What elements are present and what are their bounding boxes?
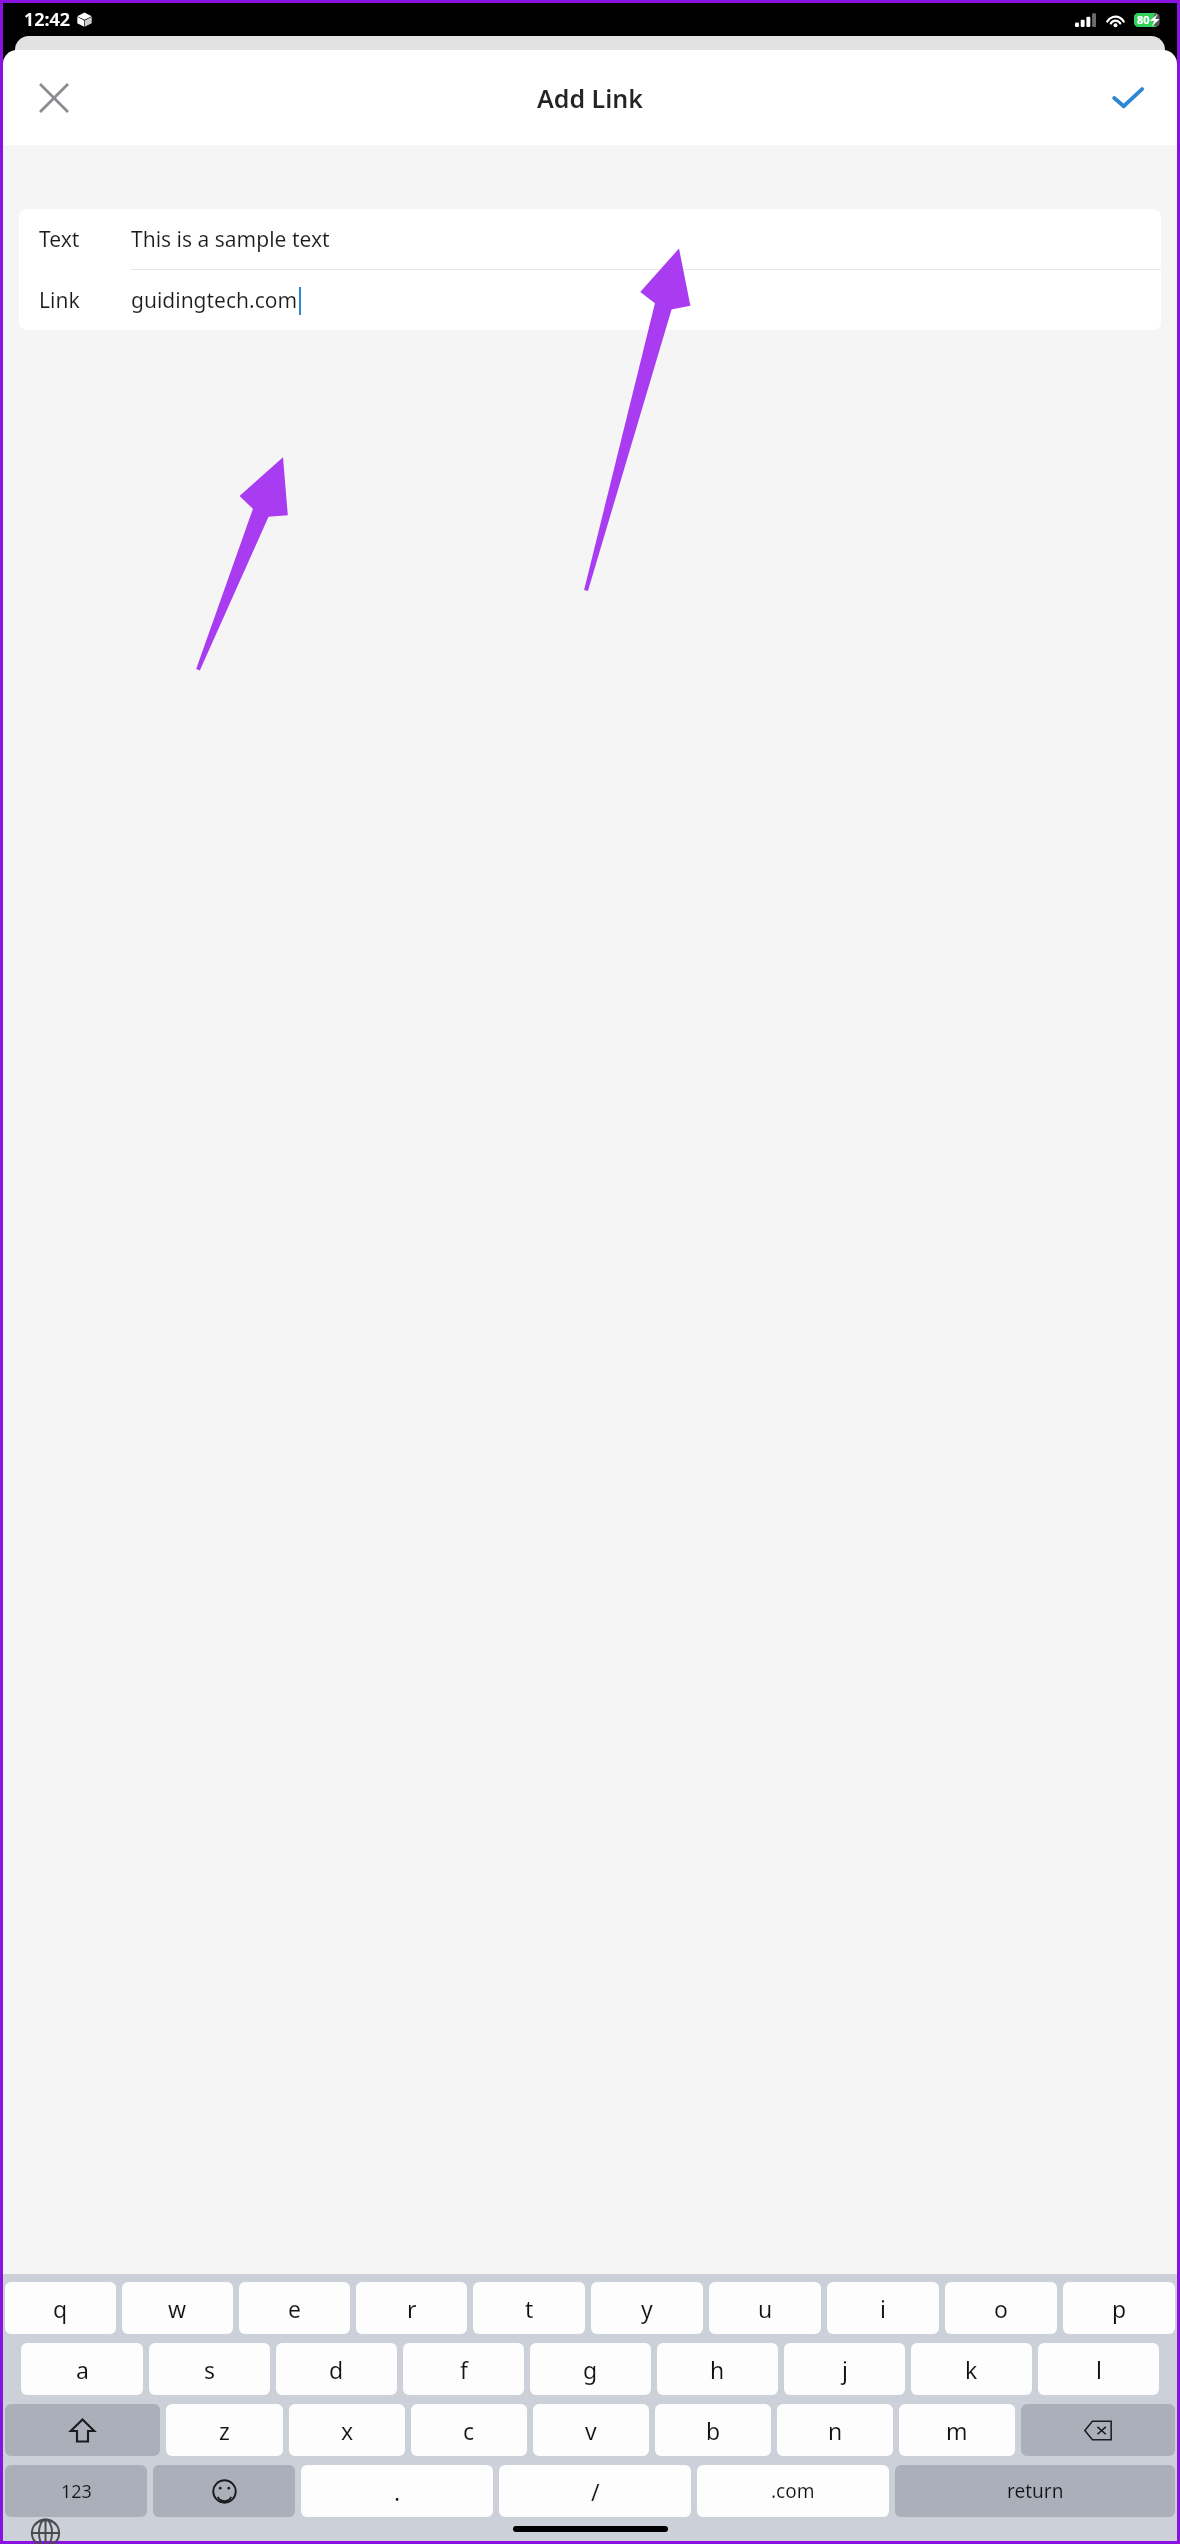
button[interactable]: e (239, 2282, 350, 2334)
staticText: x (341, 2415, 354, 2446)
button[interactable]: / (499, 2465, 691, 2517)
staticText: e (288, 2293, 301, 2324)
button[interactable]: j (784, 2343, 905, 2395)
button[interactable]: n (777, 2404, 893, 2456)
staticText: l (1096, 2354, 1102, 2385)
staticText: w (168, 2293, 187, 2324)
button[interactable]: c (411, 2404, 527, 2456)
button[interactable]: .com (697, 2465, 889, 2517)
button[interactable]: b (655, 2404, 771, 2456)
staticText: y (641, 2293, 653, 2324)
staticText: p (1112, 2293, 1127, 2324)
button[interactable]: Close (25, 69, 83, 127)
staticText: r (407, 2293, 417, 2324)
button[interactable]: w (122, 2282, 233, 2334)
button[interactable]: Change keyboard (25, 2525, 65, 2541)
staticText: Link (39, 286, 80, 315)
staticText: guidingtech.com (131, 286, 298, 315)
staticText: k (965, 2354, 978, 2385)
staticText: t (525, 2293, 534, 2324)
button[interactable]: m (899, 2404, 1015, 2456)
button[interactable]: 123 (5, 2465, 147, 2517)
staticText: s (204, 2354, 216, 2385)
button[interactable]: Link (19, 270, 1161, 330)
staticText: b (706, 2415, 721, 2446)
button[interactable]: g (530, 2343, 651, 2395)
button[interactable]: q (5, 2282, 116, 2334)
staticText: d (329, 2354, 344, 2385)
button[interactable]: a (21, 2343, 143, 2395)
button[interactable]: t (473, 2282, 585, 2334)
button[interactable]: . (301, 2465, 493, 2517)
button[interactable]: Backspace (1021, 2404, 1175, 2456)
staticText: n (828, 2415, 843, 2446)
button[interactable]: s (149, 2343, 270, 2395)
button[interactable]: i (827, 2282, 939, 2334)
staticText: c (463, 2415, 475, 2446)
button[interactable]: k (911, 2343, 1032, 2395)
button[interactable]: h (657, 2343, 778, 2395)
button[interactable]: o (945, 2282, 1057, 2334)
staticText: f (460, 2354, 468, 2385)
staticText: z (219, 2415, 230, 2446)
staticText: return (1007, 2478, 1064, 2504)
button[interactable]: Emoji (153, 2465, 295, 2517)
staticText: / (591, 2476, 600, 2507)
button[interactable]: u (709, 2282, 821, 2334)
button[interactable]: x (289, 2404, 405, 2456)
button[interactable]: y (591, 2282, 703, 2334)
staticText: o (994, 2293, 1008, 2324)
staticText: m (946, 2415, 968, 2446)
button[interactable]: f (403, 2343, 524, 2395)
button[interactable]: Shift (5, 2404, 160, 2456)
button[interactable]: z (166, 2404, 283, 2456)
staticText: h (710, 2354, 725, 2385)
button[interactable]: l (1038, 2343, 1159, 2395)
staticText: Add Link (537, 81, 643, 115)
button[interactable]: return (895, 2465, 1175, 2517)
button[interactable]: d (276, 2343, 397, 2395)
button[interactable]: p (1063, 2282, 1175, 2334)
staticText: 12:42 (24, 7, 71, 32)
staticText: .com (771, 2478, 815, 2504)
staticText: . (394, 2476, 401, 2507)
staticText: u (758, 2293, 773, 2324)
staticText: g (583, 2354, 598, 2385)
button[interactable]: v (533, 2404, 649, 2456)
staticText: i (880, 2293, 886, 2324)
staticText: j (842, 2354, 848, 2385)
button[interactable]: Done (1099, 69, 1157, 127)
staticText: a (76, 2354, 89, 2385)
staticText: Text (39, 225, 80, 254)
staticText: 80 (1137, 12, 1150, 27)
button[interactable]: Text (19, 209, 1161, 269)
staticText: v (585, 2415, 597, 2446)
staticText: This is a sample text (131, 225, 330, 254)
staticText: q (53, 2293, 68, 2324)
button[interactable]: r (356, 2282, 467, 2334)
staticText: 123 (61, 2479, 92, 2504)
